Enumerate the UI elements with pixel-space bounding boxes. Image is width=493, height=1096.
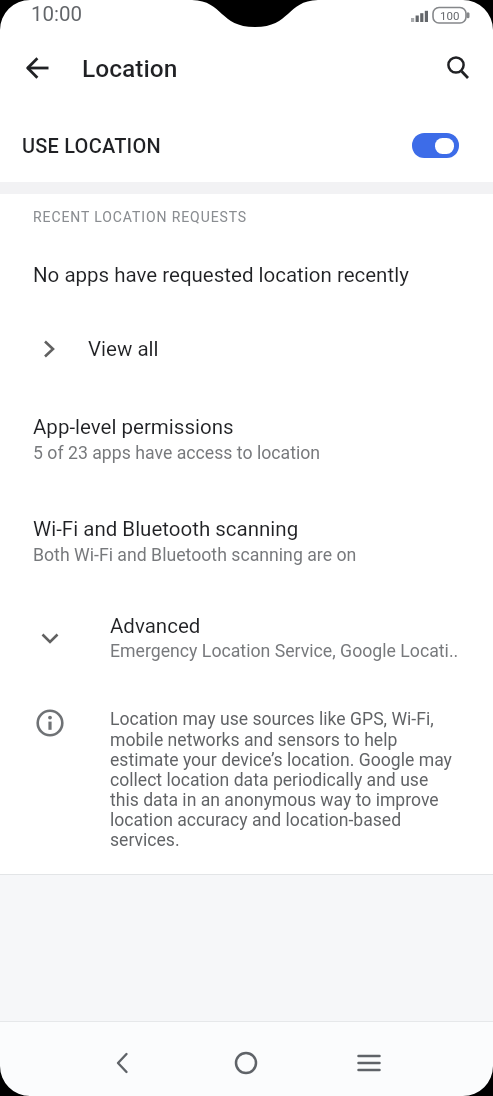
button[interactable]: View all: [0, 321, 493, 377]
button[interactable]: USE LOCATION: [0, 112, 493, 178]
button[interactable]: [345, 1039, 393, 1087]
staticText: Wi-Fi and Bluetooth scanning: [33, 517, 299, 541]
button[interactable]: [14, 44, 62, 92]
staticText: Advanced: [110, 614, 201, 638]
staticText: App-level permissions: [33, 415, 234, 439]
staticText: View all: [88, 337, 159, 361]
staticText: 10:00: [31, 2, 83, 26]
button[interactable]: [99, 1039, 147, 1087]
staticText: No apps have requested location recently: [33, 263, 409, 287]
staticText: Both Wi-Fi and Bluetooth scanning are on: [33, 545, 357, 566]
staticText: 5 of 23 apps have access to location: [33, 443, 321, 464]
button[interactable]: Wi-Fi and Bluetooth scanning: [0, 504, 493, 580]
button[interactable]: Advanced: [0, 601, 493, 677]
button[interactable]: [434, 45, 482, 93]
button[interactable]: App-level permissions: [0, 402, 493, 478]
staticText: Emergency Location Service, Google Locat…: [110, 641, 459, 662]
staticText: 100: [440, 9, 460, 22]
staticText: Location may use sources like GPS, Wi-Fi…: [110, 709, 452, 851]
button[interactable]: [222, 1039, 270, 1087]
button[interactable]: [412, 133, 459, 158]
staticText: USE LOCATION: [22, 134, 161, 157]
staticText: RECENT LOCATION REQUESTS: [33, 209, 248, 225]
staticText: Location: [82, 54, 178, 83]
